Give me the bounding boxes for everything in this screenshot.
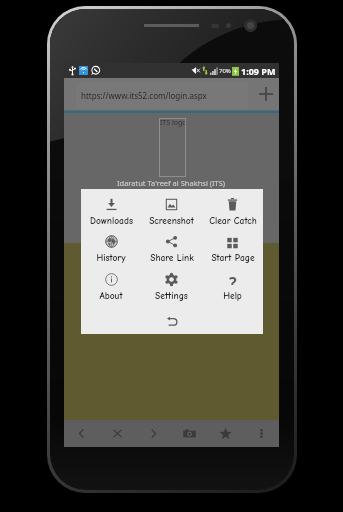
staticText: Idaratut Ta'reef al Shakhsi (ITS) (117, 178, 226, 188)
button[interactable]: Share Link (141, 235, 202, 273)
staticText: ? (229, 272, 237, 285)
button[interactable]: ? (202, 273, 263, 311)
staticText: Downloads (90, 215, 133, 226)
button[interactable]: Screenshot (141, 198, 202, 235)
button[interactable]: About (81, 273, 141, 311)
button[interactable]: Start Page (202, 235, 263, 273)
staticText: Settings (155, 290, 188, 301)
staticText: 1:09 PM (241, 65, 276, 77)
staticText: Start Page (211, 252, 255, 263)
staticText: Share Link (150, 252, 194, 263)
staticText: Help (223, 290, 242, 301)
staticText: ITS logo (160, 118, 187, 128)
staticText: https://www.its52.com/login.aspx (81, 90, 207, 101)
button[interactable]: Stop (99, 420, 135, 447)
button[interactable]: Forward (135, 420, 171, 447)
staticText: 70% (219, 67, 231, 75)
button[interactable]: https://www.its52.com/login.aspx (76, 83, 248, 108)
button[interactable]: Settings (141, 273, 202, 311)
button[interactable]: Bookmarks (207, 420, 243, 447)
staticText: About (99, 290, 123, 301)
button[interactable]: More options (243, 420, 279, 447)
button[interactable]: Downloads (81, 198, 141, 235)
button[interactable]: New tab (252, 78, 279, 110)
staticText: History (96, 252, 126, 263)
button[interactable]: Camera (171, 420, 207, 447)
staticText: Screenshot (149, 215, 194, 226)
staticText: Clear Catch (209, 215, 257, 226)
button[interactable]: Back (64, 420, 99, 447)
button[interactable]: Back (81, 311, 263, 334)
button[interactable]: Clear Catch (202, 198, 263, 235)
button[interactable]: History (81, 235, 141, 273)
